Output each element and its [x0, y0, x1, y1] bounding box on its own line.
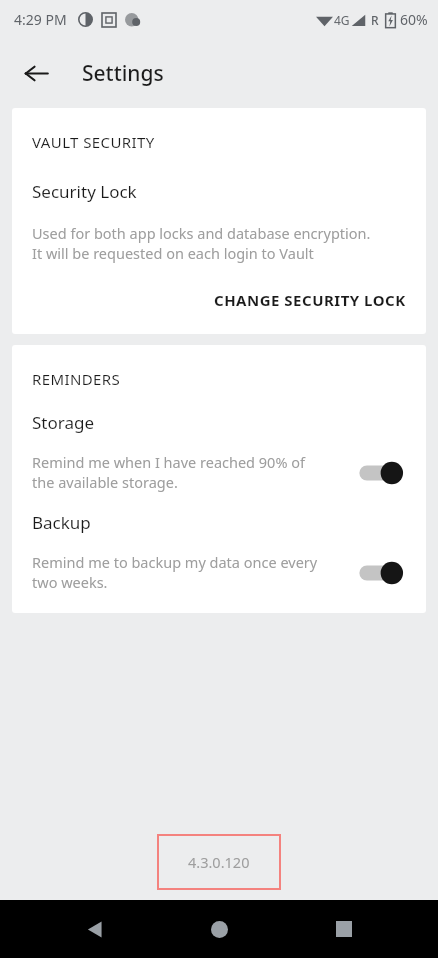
staticText: REMINDERS	[32, 369, 121, 389]
button[interactable]: CHANGE SECURITY LOCK	[212, 286, 408, 314]
staticText: Settings	[82, 59, 164, 88]
staticText: 4G	[334, 12, 350, 28]
staticText: Used for both app locks and database enc…	[32, 223, 371, 264]
button[interactable]: Storage reminder toggle	[356, 456, 412, 490]
staticText: R	[371, 12, 379, 28]
staticText: CHANGE SECURITY LOCK	[214, 290, 406, 310]
staticText: Security Lock	[32, 180, 137, 203]
staticText: VAULT SECURITY	[32, 132, 155, 152]
staticText: Backup	[32, 511, 91, 534]
staticText: Remind me to backup my data once every t…	[32, 552, 318, 593]
staticText: 4.3.0.120	[188, 852, 250, 872]
button[interactable]: Back	[65, 900, 125, 958]
button[interactable]: 4.3.0.120	[157, 834, 281, 890]
button[interactable]: Recent apps	[314, 900, 374, 958]
staticText: 60%	[400, 10, 428, 29]
button[interactable]: Backup reminder toggle	[356, 556, 412, 590]
staticText: Remind me when I have reached 90% of the…	[32, 452, 305, 493]
staticText: Storage	[32, 411, 95, 434]
button[interactable]: Back	[14, 51, 58, 95]
button[interactable]: Home	[189, 900, 249, 958]
staticText: 4:29 PM	[14, 10, 67, 29]
